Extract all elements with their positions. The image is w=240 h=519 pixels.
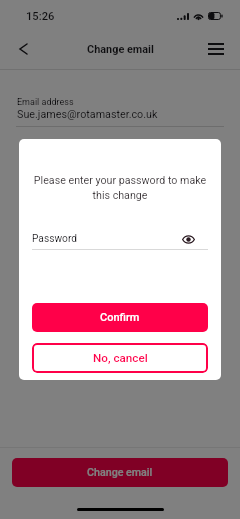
staticText: Email address bbox=[17, 97, 74, 108]
staticText: Please enter your password to make this … bbox=[32, 174, 208, 201]
button[interactable]: Confirm bbox=[32, 303, 208, 332]
button[interactable]: Menu bbox=[204, 37, 228, 61]
button[interactable]: No, cancel bbox=[32, 343, 208, 373]
staticText: No, cancel bbox=[93, 351, 148, 365]
staticText: Confirm bbox=[100, 311, 140, 324]
staticText: 15:26 bbox=[26, 10, 55, 23]
button[interactable]: Show password bbox=[179, 230, 197, 248]
button[interactable]: Change email bbox=[12, 458, 228, 487]
button[interactable]: Back bbox=[11, 37, 35, 61]
staticText: Change email bbox=[87, 43, 154, 56]
staticText: Sue.james@rotamaster.co.uk bbox=[17, 108, 158, 121]
staticText: Password bbox=[32, 233, 77, 245]
staticText: Change email bbox=[87, 466, 153, 479]
